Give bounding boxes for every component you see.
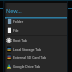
button[interactable]: Root Tab (5, 36, 67, 44)
button[interactable]: Folder (5, 17, 67, 25)
staticText: Folder (13, 19, 24, 24)
button[interactable]: New... (6, 4, 68, 16)
button[interactable]: File (5, 26, 67, 34)
staticText: External SD Card Tab (13, 55, 47, 60)
button[interactable]: Local Storage Tab (5, 45, 67, 53)
button[interactable]: Google Drive Tab (5, 62, 67, 70)
staticText: New... (6, 7, 22, 14)
staticText: File (13, 28, 19, 33)
staticText: Google Drive Tab (13, 64, 41, 69)
staticText: Local Storage Tab (13, 47, 41, 52)
staticText: Root Tab (13, 38, 27, 43)
button[interactable]: External SD Card Tab (5, 53, 67, 61)
